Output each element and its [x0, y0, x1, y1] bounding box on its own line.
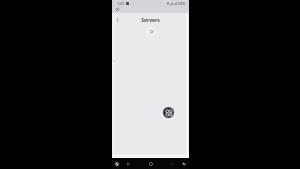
staticText: 1:01 — [117, 1, 125, 6]
button[interactable]: Home — [146, 158, 155, 169]
button[interactable]: Do not disturb — [112, 158, 121, 169]
button[interactable]: Apps — [163, 107, 174, 118]
staticText: Servers — [141, 17, 160, 24]
button[interactable]: Close — [115, 7, 120, 12]
button[interactable]: Back — [167, 158, 176, 169]
button[interactable]: Keyboard — [179, 158, 188, 169]
button[interactable]: Back — [112, 14, 123, 25]
staticText: 58% — [178, 1, 186, 6]
button[interactable]: Recent apps — [123, 158, 132, 169]
